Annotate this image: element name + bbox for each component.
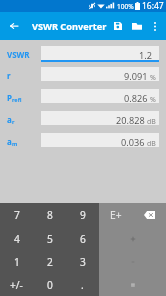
button[interactable]: Backspace [132,203,166,227]
button[interactable]: Back [0,14,27,38]
button[interactable]: 3 [66,250,99,273]
button[interactable]: a [0,111,166,127]
staticText: 20.828 [116,114,145,127]
staticText: r [12,118,15,125]
button[interactable]: 9 [66,203,99,227]
button[interactable]: 1 [0,250,33,273]
button[interactable]: = [99,273,166,296]
button[interactable]: VSWR [0,46,166,62]
button[interactable]: r [0,67,166,83]
button[interactable]: More options [146,14,163,38]
staticText: 0 [47,278,53,292]
staticText: VSWR [7,49,30,60]
staticText: 7 [14,208,20,222]
staticText: 4 [14,232,20,246]
staticText: % [150,95,156,105]
staticText: 1 [14,255,20,269]
button[interactable]: 0 [33,273,66,296]
staticText: P [7,92,12,103]
button[interactable]: a [0,133,166,149]
staticText: 9.091 [124,70,148,83]
button[interactable]: 5 [33,227,66,250]
button[interactable]: 8 [33,203,66,227]
staticText: m [12,140,18,147]
button[interactable]: E+ [99,203,132,227]
staticText: VSWR Converter [32,20,107,33]
button[interactable]: 7 [0,203,33,227]
staticText: 0.826 [124,92,148,105]
staticText: 16:47 [142,0,164,12]
button[interactable]: Open file [127,14,146,38]
staticText: 6 [80,232,86,246]
staticText: . [81,278,84,292]
button[interactable]: 2 [33,250,66,273]
staticText: 1.2 [139,49,152,62]
staticText: 9 [80,208,86,222]
button[interactable]: Save [108,14,127,38]
staticText: % [150,73,156,83]
button[interactable]: . [66,273,99,296]
staticText: a [7,136,12,147]
staticText: 0.036 [121,136,145,149]
staticText: dB [147,139,156,149]
staticText: r [7,70,11,81]
staticText: a [7,114,12,125]
button[interactable]: 4 [0,227,33,250]
button[interactable]: 6 [66,227,99,250]
staticText: E+ [110,208,122,222]
button[interactable]: P [0,89,166,105]
staticText: 5 [47,232,53,246]
staticText: dB [147,117,156,127]
staticText: 100% [117,2,134,11]
staticText: 3 [80,255,86,269]
staticText: +/- [10,278,23,292]
staticText: refl [12,96,22,103]
staticText: 2 [47,255,53,269]
button[interactable]: +/- [0,273,33,296]
staticText: 8 [47,208,53,222]
